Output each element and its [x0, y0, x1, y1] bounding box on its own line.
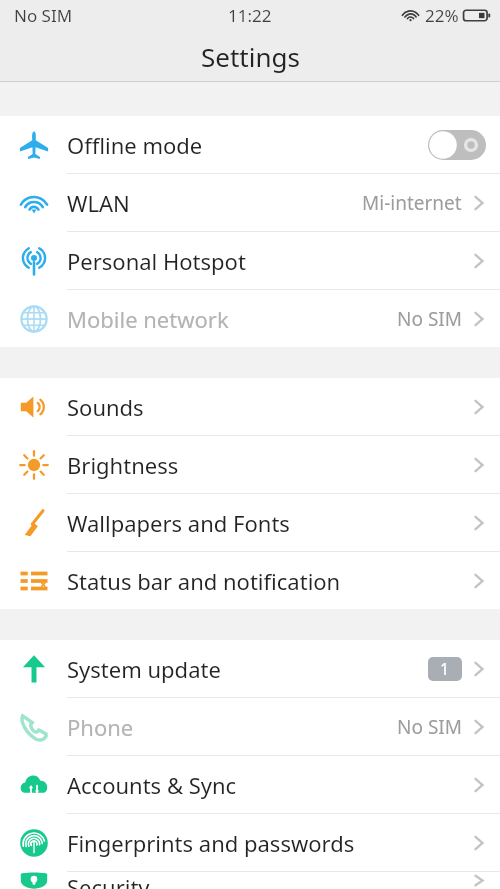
staticText: No SIM — [14, 4, 73, 27]
button[interactable]: Security — [0, 872, 500, 889]
staticText: System update — [67, 654, 221, 684]
staticText: Brightness — [67, 450, 179, 480]
button[interactable]: Status bar and notification — [0, 552, 500, 609]
button[interactable]: Brightness — [0, 436, 500, 493]
button[interactable]: Sounds — [0, 378, 500, 435]
staticText: No SIM — [397, 714, 462, 740]
staticText: Fingerprints and passwords — [67, 828, 355, 858]
staticText: Mi-internet — [362, 190, 462, 216]
button[interactable]: Mobile network — [0, 290, 500, 347]
staticText: Personal Hotspot — [67, 246, 246, 276]
button[interactable]: System update — [0, 640, 500, 697]
button[interactable]: Offline mode — [0, 116, 500, 173]
staticText: Mobile network — [67, 304, 229, 334]
button[interactable]: Personal Hotspot — [0, 232, 500, 289]
staticText: Sounds — [67, 392, 144, 422]
staticText: Security — [67, 872, 150, 889]
staticText: 11:22 — [228, 4, 272, 27]
button[interactable]: Accounts & Sync — [0, 756, 500, 813]
staticText: Settings — [201, 39, 300, 74]
staticText: 1 — [440, 658, 450, 680]
button[interactable]: Wallpapers and Fonts — [0, 494, 500, 551]
staticText: Offline mode — [67, 130, 203, 160]
staticText: WLAN — [67, 188, 130, 218]
staticText: 22% — [425, 4, 459, 27]
staticText: Status bar and notification — [67, 566, 341, 596]
staticText: Phone — [67, 712, 134, 742]
button[interactable]: Fingerprints and passwords — [0, 814, 500, 871]
button[interactable]: WLAN — [0, 174, 500, 231]
staticText: Accounts & Sync — [67, 770, 237, 800]
button[interactable]: Offline mode toggle — [428, 130, 486, 160]
staticText: Wallpapers and Fonts — [67, 508, 290, 538]
staticText: No SIM — [397, 306, 462, 332]
button[interactable]: Phone — [0, 698, 500, 755]
